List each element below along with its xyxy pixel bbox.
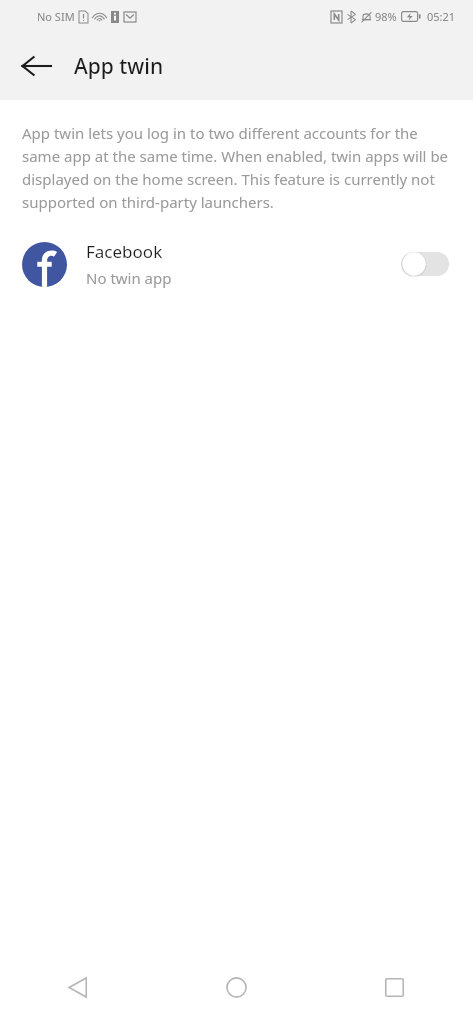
staticText: App twin	[74, 52, 164, 81]
button[interactable]: Back	[10, 40, 62, 92]
staticText: No twin app	[86, 268, 172, 288]
staticText: 98%	[375, 9, 397, 24]
button[interactable]: Enable twin app for Facebook	[401, 251, 449, 277]
staticText: App twin lets you log in to two differen…	[22, 123, 451, 212]
staticText: 05:21	[427, 9, 456, 24]
button[interactable]: Recent apps	[315, 950, 473, 1024]
button[interactable]: Facebook	[0, 228, 473, 300]
staticText: No SIM	[37, 9, 75, 24]
staticText: Facebook	[86, 240, 163, 263]
button[interactable]: Home	[157, 950, 315, 1024]
button[interactable]: Back	[0, 950, 157, 1024]
